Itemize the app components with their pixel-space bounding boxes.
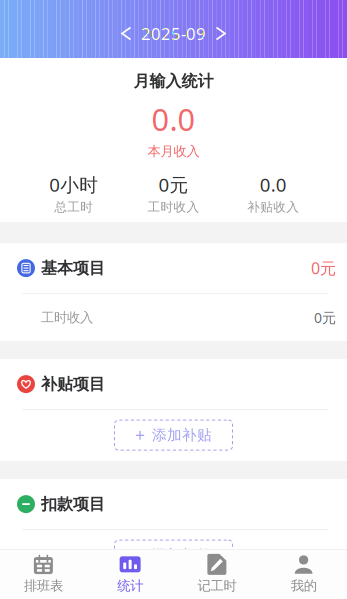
staticText: 统计 xyxy=(117,577,143,594)
staticText: 0.0 xyxy=(151,98,195,140)
staticText: 月输入统计 xyxy=(133,71,213,91)
staticText: 排班表 xyxy=(24,577,63,594)
button[interactable]: + xyxy=(114,540,232,570)
button[interactable]: 记工时 xyxy=(173,549,260,599)
staticText: 工时收入 xyxy=(41,309,93,326)
staticText: 0小时 xyxy=(49,172,98,197)
staticText: 本月收入 xyxy=(147,143,199,160)
button[interactable]: + xyxy=(114,420,232,450)
staticText: 扣款项目 xyxy=(41,494,105,514)
staticText: 补贴项目 xyxy=(41,374,105,394)
button[interactable]: Previous month xyxy=(115,26,137,41)
staticText: 0元 xyxy=(158,172,188,197)
staticText: 基本项目 xyxy=(41,258,105,278)
staticText: 0.0 xyxy=(260,172,287,197)
staticText: 添加扣款 xyxy=(152,546,212,564)
button[interactable]: 排班表 xyxy=(0,549,87,599)
staticText: 工时收入 xyxy=(147,199,199,215)
staticText: 我的 xyxy=(291,577,317,594)
staticText: 0元 xyxy=(314,308,336,327)
button[interactable]: 我的 xyxy=(260,549,347,599)
staticText: 总工时 xyxy=(54,199,93,215)
staticText: 0元 xyxy=(311,257,336,279)
staticText: 补贴收入 xyxy=(247,199,299,215)
staticText: 添加补贴 xyxy=(152,426,212,444)
button[interactable]: Next month xyxy=(210,26,231,41)
staticText: 记工时 xyxy=(197,577,236,594)
staticText: + xyxy=(135,543,145,567)
staticText: 2025-09 xyxy=(141,22,206,45)
staticText: + xyxy=(135,423,145,447)
button[interactable]: 统计 xyxy=(87,549,174,599)
